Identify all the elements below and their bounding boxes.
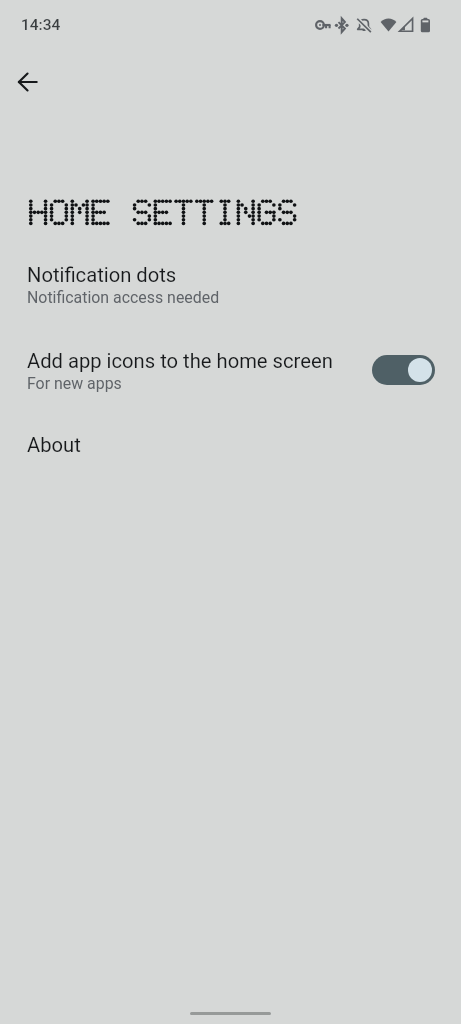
staticText: Notification dots (27, 263, 177, 287)
staticText: About (27, 433, 81, 457)
staticText: 14:34 (21, 16, 61, 34)
button[interactable]: Toggle add app icons to the home screen (372, 355, 435, 385)
button[interactable]: About (0, 433, 461, 489)
button[interactable]: Add app icons to the home screen (0, 349, 461, 421)
button[interactable]: Notification dots (0, 263, 461, 335)
button[interactable]: Navigate up (3, 58, 51, 106)
staticText: For new apps (27, 374, 122, 393)
staticText: Notification access needed (27, 288, 220, 307)
staticText: Add app icons to the home screen (27, 349, 333, 373)
